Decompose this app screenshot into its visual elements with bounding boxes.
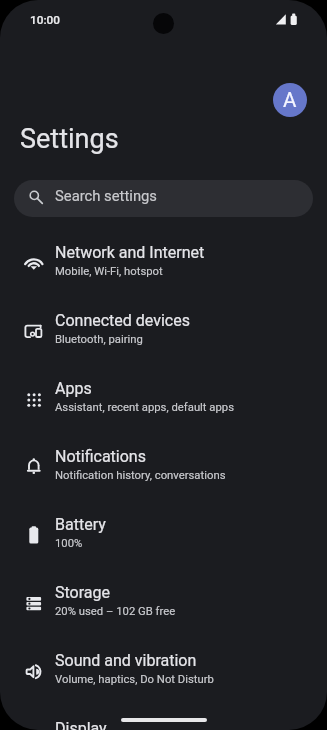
button[interactable]: Sound and vibration — [0, 638, 327, 706]
button[interactable]: A — [273, 83, 307, 117]
staticText: Search settings — [55, 187, 158, 204]
staticText: 10:00 — [30, 13, 60, 27]
staticText: Network and Internet — [55, 243, 205, 262]
staticText: Sound and vibration — [55, 651, 197, 670]
staticText: Apps — [55, 379, 92, 398]
button[interactable]: Apps — [0, 366, 327, 434]
staticText: Settings — [20, 123, 119, 155]
button[interactable]: Search settings — [14, 180, 313, 217]
staticText: Volume, haptics, Do Not Disturb — [55, 673, 214, 686]
button[interactable]: Display — [0, 706, 327, 730]
staticText: Mobile, Wi-Fi, hotspot — [55, 265, 163, 278]
staticText: 20% used – 102 GB free — [55, 605, 176, 618]
staticText: Connected devices — [55, 311, 190, 330]
staticText: 100% — [55, 537, 83, 550]
staticText: Notifications — [55, 447, 146, 466]
staticText: Notification history, conversations — [55, 469, 226, 482]
button[interactable]: Network and Internet — [0, 230, 327, 298]
staticText: Assistant, recent apps, default apps — [55, 401, 235, 414]
button[interactable]: Connected devices — [0, 298, 327, 366]
button[interactable]: Battery — [0, 502, 327, 570]
staticText: A — [283, 88, 297, 112]
button[interactable]: Notifications — [0, 434, 327, 502]
button[interactable]: Storage — [0, 570, 327, 638]
staticText: Storage — [55, 583, 110, 602]
staticText: Bluetooth, pairing — [55, 333, 143, 346]
staticText: Display — [55, 719, 107, 730]
staticText: Battery — [55, 515, 106, 534]
